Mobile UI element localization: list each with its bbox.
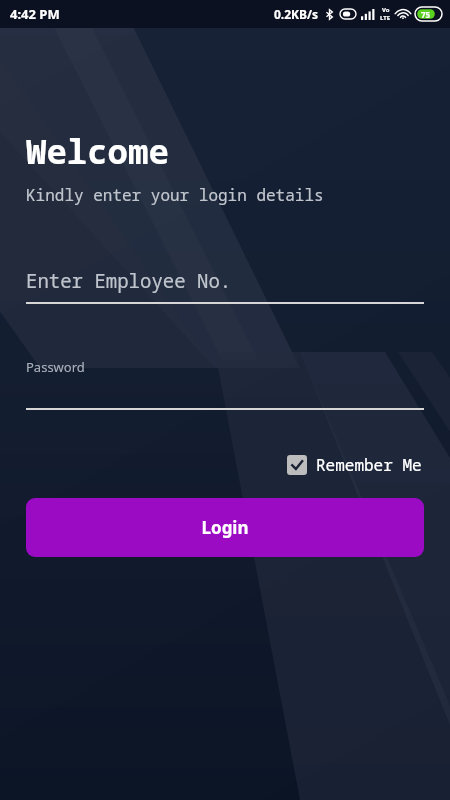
button[interactable]: Remember Me — [283, 450, 426, 480]
button[interactable]: Enter Employee No. — [26, 268, 424, 304]
staticText: Password — [26, 358, 85, 376]
staticText: Vo — [382, 6, 390, 14]
staticText: Login — [201, 516, 249, 539]
staticText: LTE — [380, 14, 391, 22]
button[interactable]: Login — [26, 498, 424, 557]
staticText: 4:42 PM — [10, 5, 60, 23]
staticText: Remember Me — [316, 454, 422, 476]
staticText: 0.2KB/s — [274, 6, 319, 22]
staticText: 75 — [421, 9, 431, 20]
button[interactable]: Password — [26, 358, 424, 410]
other: Bluetooth — [324, 9, 335, 20]
staticText: Enter Employee No. — [26, 268, 232, 294]
staticText: Welcome — [26, 128, 169, 174]
staticText: Kindly enter your login details — [26, 184, 324, 206]
